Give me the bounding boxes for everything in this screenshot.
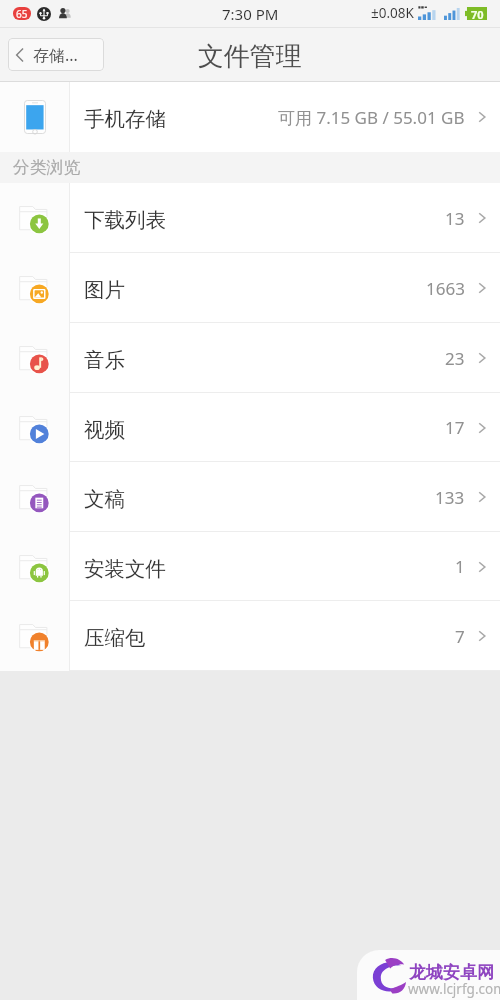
staticText: 存储...	[33, 44, 78, 66]
staticText: 23	[445, 347, 465, 370]
staticText: 13	[445, 207, 465, 230]
button[interactable]: 安装文件	[0, 532, 500, 601]
button[interactable]: 视频	[0, 393, 500, 462]
staticText: 70	[471, 7, 484, 22]
staticText: 1663	[426, 277, 465, 300]
button[interactable]: 下载列表	[0, 183, 500, 253]
staticText: 17	[445, 416, 465, 439]
staticText: 文件管理	[198, 40, 302, 73]
staticText: 可用 7.15 GB / 55.01 GB	[278, 106, 465, 129]
button[interactable]: 图片	[0, 253, 500, 323]
button[interactable]: 文稿	[0, 462, 500, 532]
staticText: 图片	[84, 277, 125, 303]
staticText: 龙城安卓网	[409, 962, 494, 983]
staticText: 文稿	[84, 486, 125, 512]
button[interactable]: 存储...	[8, 38, 104, 71]
staticText: 压缩包	[84, 625, 146, 651]
staticText: 音乐	[84, 347, 125, 373]
staticText: 65	[16, 7, 28, 20]
staticText: 手机存储	[84, 106, 166, 132]
staticText: 下载列表	[84, 207, 166, 233]
staticText: 1	[455, 555, 465, 578]
button[interactable]: 压缩包	[0, 601, 500, 671]
staticText: 视频	[84, 417, 125, 443]
staticText: www.lcjrfg.com	[408, 980, 500, 998]
staticText: 133	[435, 486, 465, 509]
staticText: ±0.08K	[371, 4, 414, 22]
button[interactable]: 音乐	[0, 323, 500, 393]
button[interactable]: 手机存储	[0, 82, 500, 152]
staticText: 7	[455, 625, 465, 648]
staticText: 分类浏览	[13, 157, 81, 178]
staticText: 7:30 PM	[222, 4, 279, 24]
staticText: 安装文件	[84, 556, 166, 582]
